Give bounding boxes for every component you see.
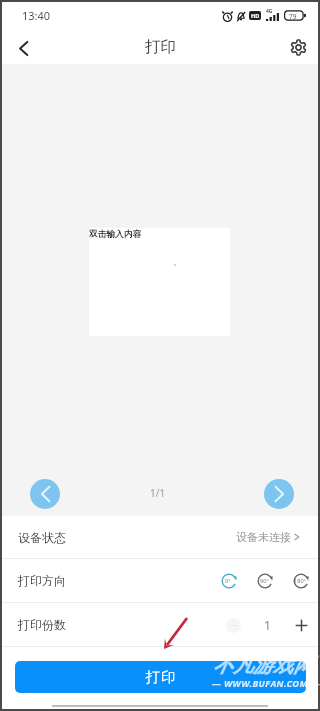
button[interactable]: Previous page [30,479,60,509]
staticText: 不凡游戏网 [213,653,313,678]
staticText: 打印 [145,37,176,57]
staticText: 双击输入内容 [89,229,142,240]
staticText: 1/1 [150,486,166,500]
staticText: HD [251,12,260,20]
button[interactable]: Decrease copies [222,614,244,636]
button[interactable]: Rotate 0° [218,570,240,592]
staticText: 打印份数 [18,617,66,632]
staticText: — WWW.BUFAN.COM — [212,677,320,690]
staticText: 0° [225,577,231,585]
staticText: 设备状态 [18,530,66,545]
button[interactable]: Back [8,30,320,64]
button[interactable]: Settings [278,30,318,64]
button[interactable]: 设备状态 [2,516,318,558]
staticText: 13:40 [22,8,51,23]
staticText: 180° [294,577,306,585]
staticText: 打印 [145,668,176,686]
staticText: 90° [260,577,269,585]
button[interactable]: Next page [264,479,294,509]
button[interactable]: Rotate 180° [290,570,312,592]
button[interactable]: Rotate 90° [254,570,276,592]
staticText: 打印方向 [18,573,66,588]
staticText: 4G [266,8,273,15]
staticText: 79 [289,12,297,21]
staticText: 设备未连接 [236,530,291,544]
button[interactable]: 打印 [15,661,306,693]
staticText: 1 [264,617,271,633]
button[interactable]: Increase copies [290,614,312,636]
